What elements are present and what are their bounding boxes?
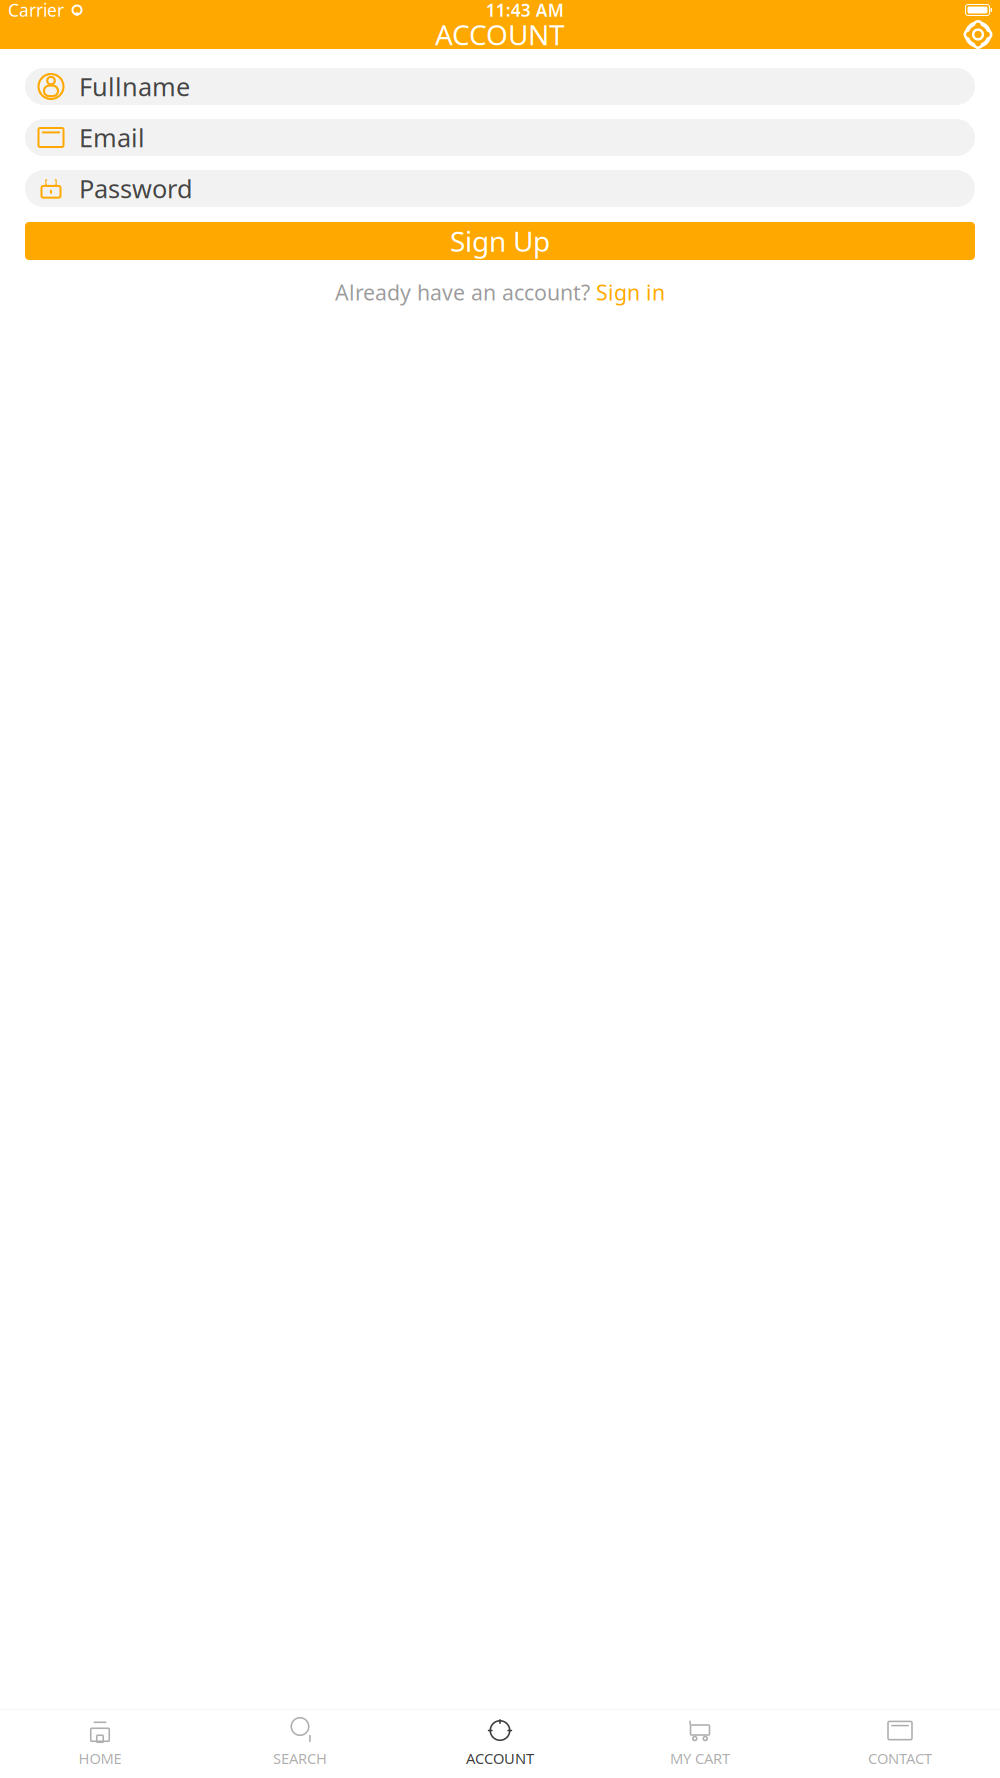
button[interactable]: Email [25,119,975,156]
staticText: 11:43 AM [486,0,564,21]
button[interactable]: Sign Up [25,222,975,260]
staticText: HOME [78,1748,121,1768]
staticText: Password [79,172,193,205]
staticText: Sign in [596,278,665,306]
staticText: Email [79,121,145,154]
button[interactable]: Already have an account? [335,278,665,306]
button[interactable]: ACCOUNT [400,1709,600,1778]
staticText: Already have an account? [335,278,596,306]
staticText: CONTACT [868,1748,932,1768]
button[interactable]: Fullname [25,68,975,105]
staticText: MY CART [670,1748,730,1768]
button[interactable]: MY CART [600,1709,800,1778]
button[interactable]: Settings [956,19,1000,49]
button[interactable]: SEARCH [200,1709,400,1778]
button[interactable]: HOME [0,1709,200,1778]
staticText: Carrier [8,0,64,21]
staticText: ACCOUNT [466,1748,534,1768]
staticText: Fullname [79,70,190,103]
button[interactable]: Password [25,170,975,207]
button[interactable]: CONTACT [800,1709,1000,1778]
staticText: ACCOUNT [435,16,565,53]
staticText: SEARCH [273,1748,327,1768]
staticText: Sign Up [450,222,550,260]
